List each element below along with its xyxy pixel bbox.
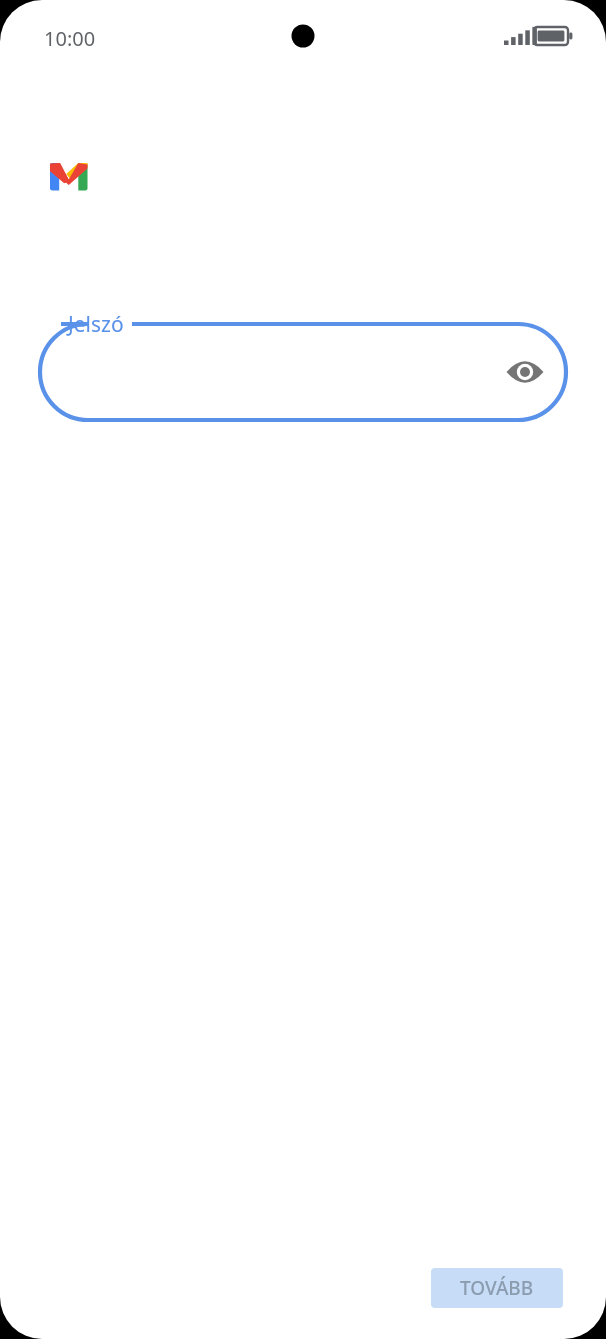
button[interactable]	[40, 322, 568, 422]
button[interactable]: Jelszó megjelenítése	[501, 348, 549, 396]
button[interactable]	[431, 1268, 563, 1308]
